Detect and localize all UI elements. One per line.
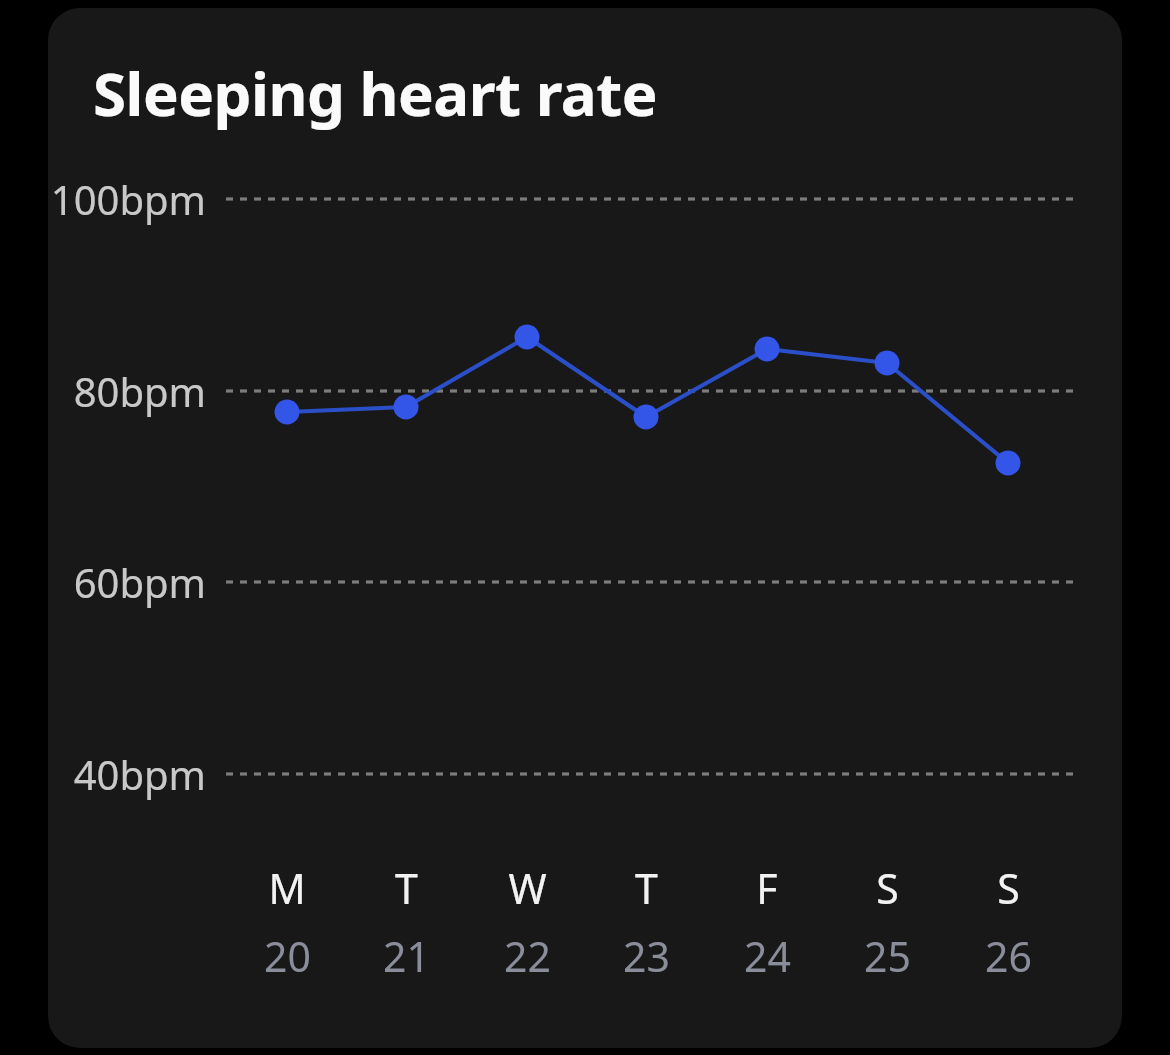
button[interactable] bbox=[48, 8, 1122, 1048]
staticText: 24 bbox=[744, 928, 791, 984]
staticText: 40bpm bbox=[73, 747, 206, 801]
button[interactable]: F bbox=[722, 859, 812, 917]
button[interactable]: 20 bbox=[242, 927, 332, 985]
button[interactable]: W bbox=[482, 859, 572, 917]
staticText: Sleeping heart rate bbox=[93, 52, 658, 130]
staticText: 100bpm bbox=[50, 172, 206, 226]
button[interactable]: S bbox=[842, 859, 932, 917]
staticText: 23 bbox=[623, 928, 670, 984]
staticText: 21 bbox=[383, 928, 430, 984]
staticText: 60bpm bbox=[73, 555, 206, 609]
other: Sleeping heart rate chart bbox=[0, 0, 1170, 1055]
button[interactable]: Sleeping heart rate bbox=[93, 52, 693, 130]
button[interactable]: S bbox=[963, 859, 1053, 917]
button[interactable]: 25 bbox=[842, 927, 932, 985]
button[interactable]: 26 bbox=[963, 927, 1053, 985]
button[interactable]: 24 bbox=[722, 927, 812, 985]
staticText: 25 bbox=[864, 928, 911, 984]
button[interactable]: M bbox=[242, 859, 332, 917]
staticText: 80bpm bbox=[73, 364, 206, 418]
staticText: S bbox=[997, 860, 1020, 916]
staticText: 26 bbox=[985, 928, 1032, 984]
staticText: 22 bbox=[504, 928, 551, 984]
button[interactable]: T bbox=[361, 859, 451, 917]
staticText: S bbox=[876, 860, 899, 916]
button[interactable]: 23 bbox=[601, 927, 691, 985]
staticText: F bbox=[756, 860, 778, 916]
staticText: W bbox=[508, 860, 547, 916]
button[interactable]: T bbox=[601, 859, 691, 917]
staticText: T bbox=[635, 860, 658, 916]
staticText: T bbox=[395, 860, 418, 916]
staticText: M bbox=[268, 860, 306, 916]
staticText: 20 bbox=[264, 928, 311, 984]
button[interactable]: 22 bbox=[482, 927, 572, 985]
button[interactable]: 21 bbox=[361, 927, 451, 985]
